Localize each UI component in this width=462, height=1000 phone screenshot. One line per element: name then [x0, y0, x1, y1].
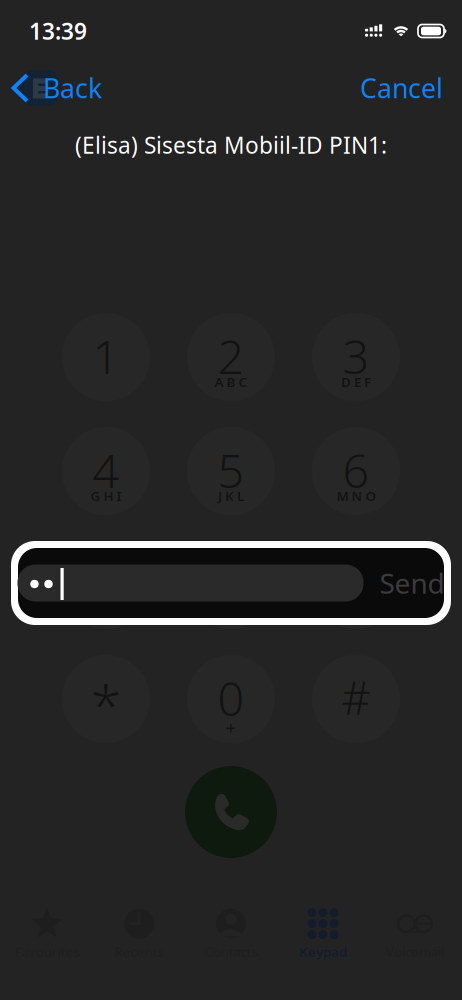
staticText: D E F: [341, 373, 371, 391]
staticText: +: [225, 715, 236, 740]
staticText: J K L: [218, 487, 244, 505]
button[interactable]: 9: [293, 528, 418, 642]
staticText: M N O: [336, 487, 375, 505]
staticText: *: [90, 667, 121, 741]
staticText: 6: [342, 439, 369, 501]
staticText: W X Y Z: [332, 601, 379, 619]
button[interactable]: Call: [168, 756, 293, 868]
staticText: Back: [43, 70, 102, 106]
staticText: 5: [217, 439, 244, 501]
staticText: 7: [92, 553, 119, 615]
staticText: Send: [379, 564, 444, 602]
button[interactable]: Cancel: [360, 62, 462, 114]
staticText: 4: [92, 439, 119, 501]
staticText: A B C: [214, 373, 247, 391]
staticText: 2: [217, 325, 244, 387]
staticText: 13:39: [29, 16, 87, 46]
button[interactable]: 7: [43, 528, 168, 642]
staticText: 9: [342, 553, 369, 615]
button[interactable]: Back: [0, 62, 160, 114]
staticText: (Elisa) Sisesta Mobiil-ID PIN1:: [75, 130, 387, 160]
staticText: Cancel: [360, 70, 443, 106]
button[interactable]: 6: [293, 414, 418, 528]
button[interactable]: 3: [293, 300, 418, 414]
button[interactable]: Keypad: [277, 899, 369, 965]
staticText: 0: [217, 667, 244, 729]
staticText: 3: [342, 325, 369, 387]
staticText: 1: [92, 325, 119, 387]
staticText: #: [341, 667, 370, 727]
staticText: G H I: [90, 487, 121, 505]
staticText: P Q R S: [84, 601, 127, 619]
staticText: 8: [217, 553, 244, 615]
button[interactable]: 4: [43, 414, 168, 528]
button[interactable]: 8: [168, 528, 293, 642]
staticText: Keypad: [299, 943, 347, 960]
staticText: T U V: [215, 601, 247, 619]
